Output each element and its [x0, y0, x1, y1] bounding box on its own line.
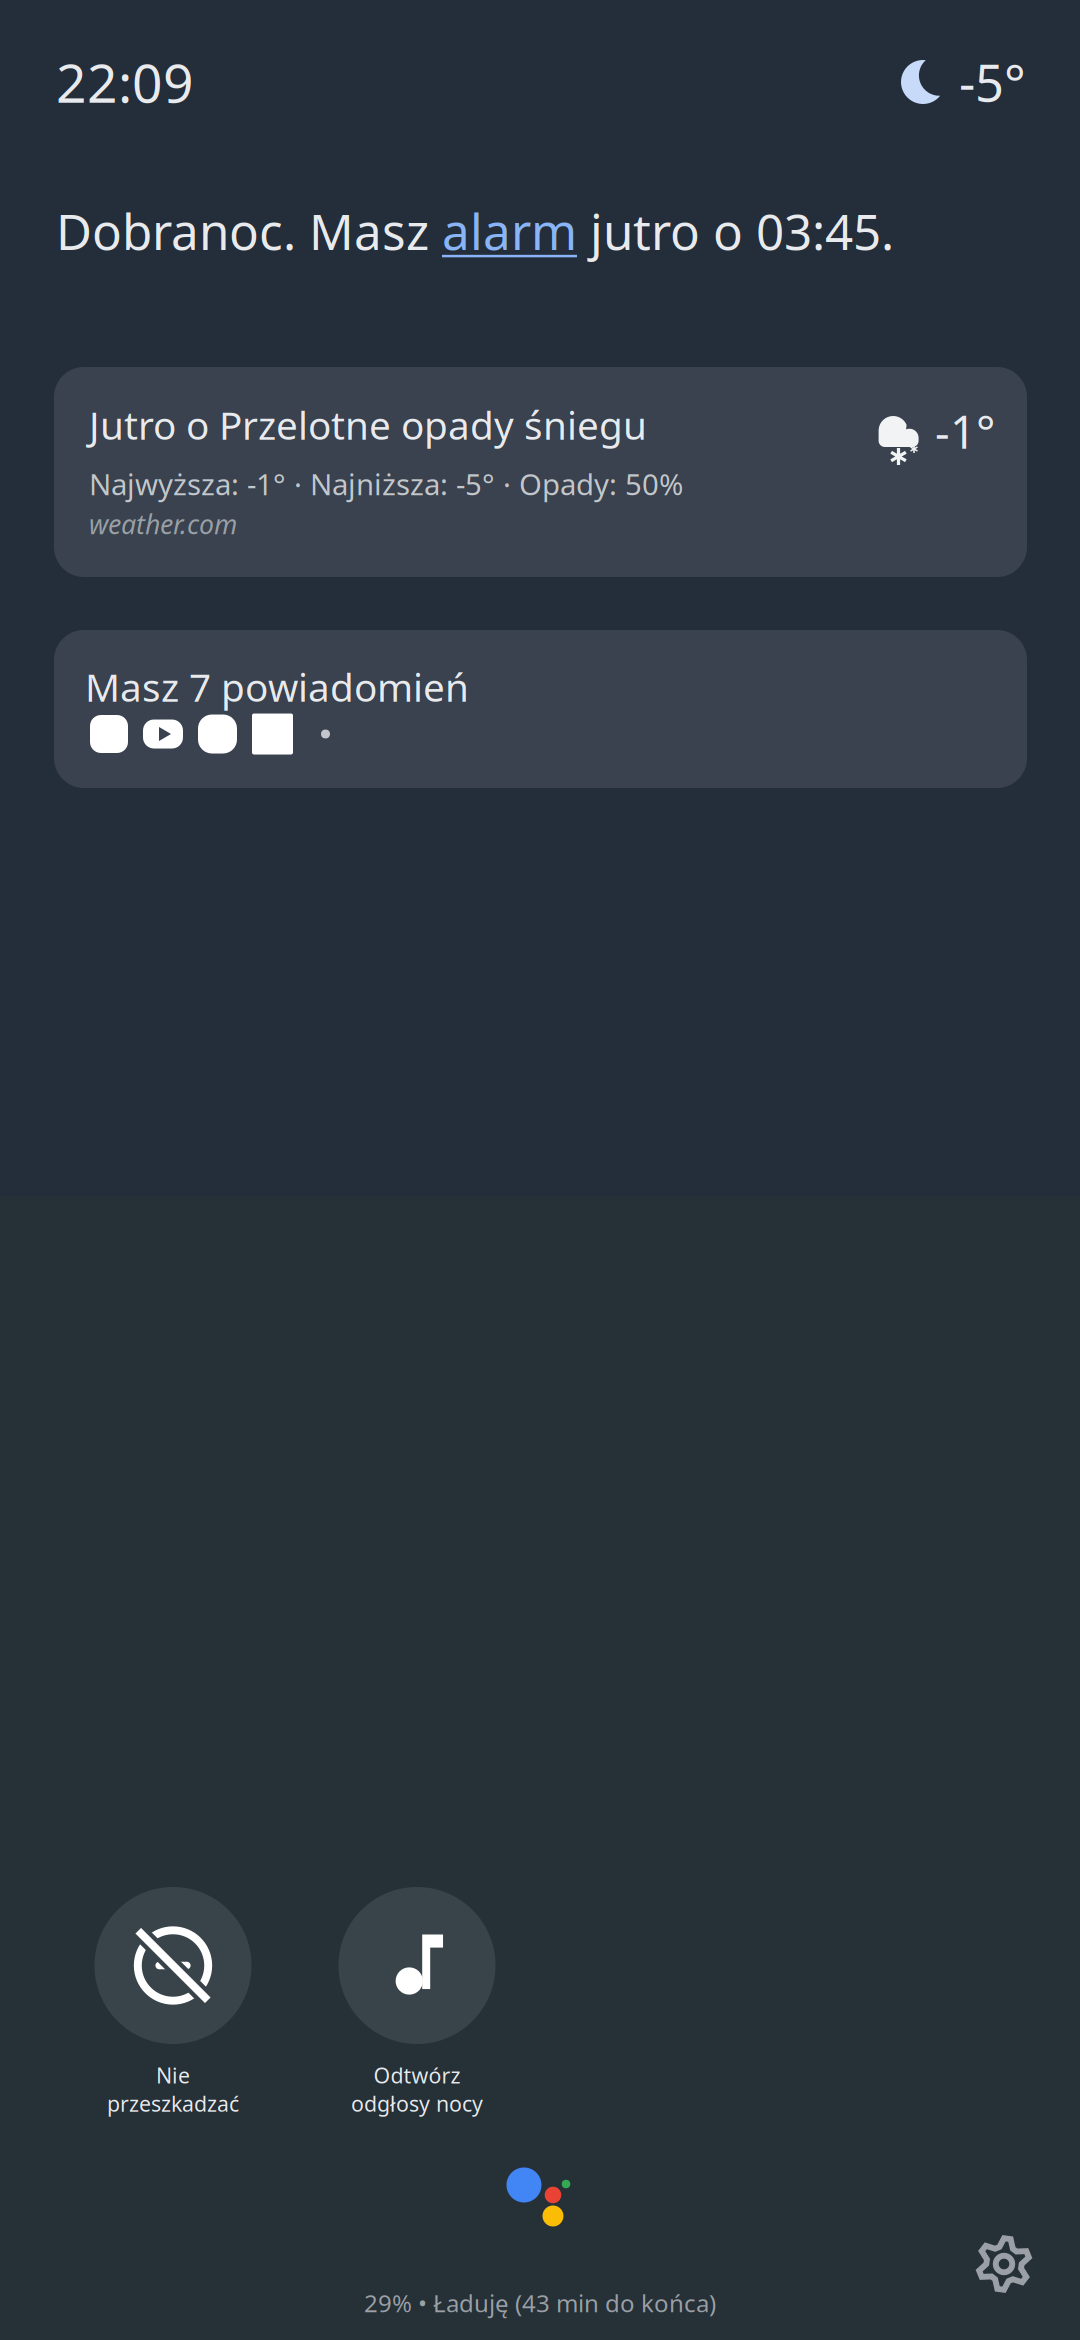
staticText: -1° — [935, 401, 995, 461]
button[interactable]: Nie przeszkadzać — [51, 1887, 295, 2137]
staticText: Odtwórz — [373, 2061, 460, 2089]
button[interactable]: Odtwórz odgłosy nocy — [295, 1887, 539, 2137]
staticText: Najwyższa: -1° · Najniższa: -5° · Opady:… — [89, 464, 683, 503]
staticText: 29% • Ładuję (43 min do końca) — [364, 2287, 716, 2319]
staticText: przeszkadzać — [107, 2089, 239, 2118]
staticText: jutro o 03:45. — [577, 198, 894, 263]
staticText: Jutro o Przelotne opady śniegu — [89, 399, 647, 450]
button[interactable]: Jutro o Przelotne opady śniegu — [54, 367, 1027, 577]
staticText: Dobranoc. Masz — [56, 198, 442, 263]
staticText: Masz 7 powiadomień — [85, 661, 469, 712]
staticText: 22:09 — [56, 47, 194, 117]
button[interactable]: Google Assistant — [506, 2167, 580, 2241]
staticText: odgłosy nocy — [351, 2089, 483, 2118]
button[interactable]: alarm — [442, 198, 577, 263]
staticText: alarm — [442, 198, 577, 263]
staticText: Nie — [156, 2061, 190, 2089]
button[interactable]: Masz 7 powiadomień — [54, 630, 1027, 788]
staticText: -5° — [959, 48, 1026, 116]
button[interactable]: Settings — [964, 2224, 1044, 2304]
staticText: weather.com — [89, 506, 237, 542]
